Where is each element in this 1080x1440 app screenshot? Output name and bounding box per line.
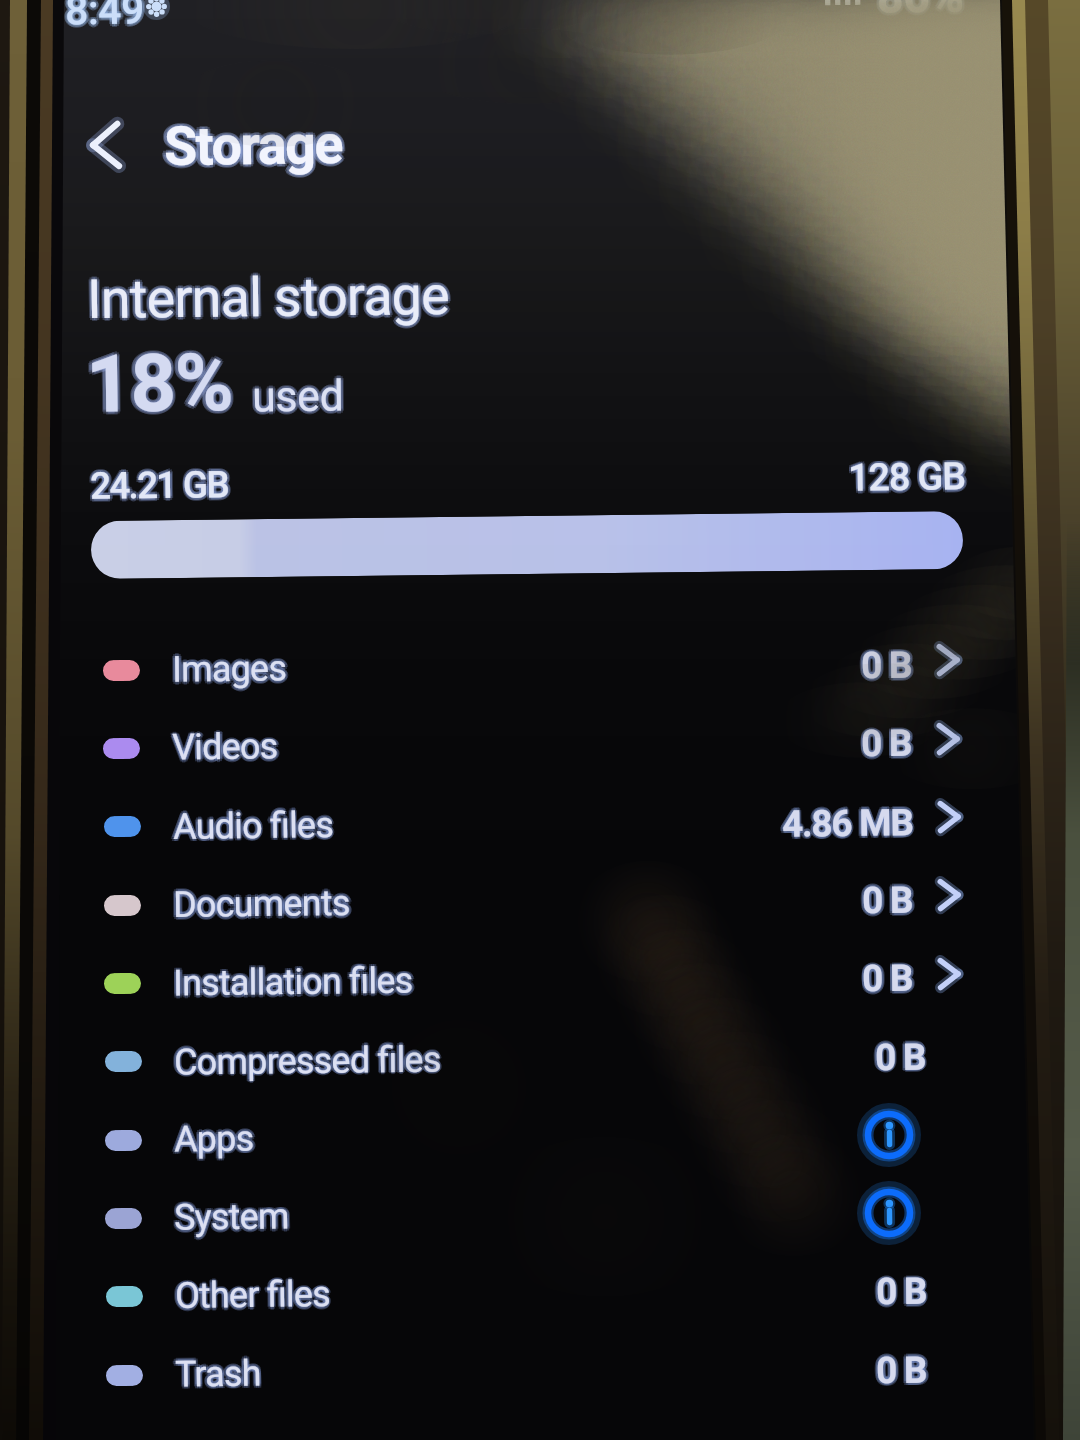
staticText: 0 B [873,1037,924,1080]
staticText: 8:49 [67,0,146,32]
staticText: 0 B [865,957,916,1000]
staticText: 0 B [860,877,911,920]
staticText: 0 B [861,647,912,690]
staticText: 86% [875,0,962,25]
staticText: 8:49 [67,0,146,36]
staticText: 0 B [874,1269,925,1312]
staticText: Compressed files [171,1038,438,1084]
staticText: Installation files [173,963,413,1007]
staticText: 86% [874,0,961,23]
staticText: 0 B [876,1346,927,1389]
staticText: 24.21 GB [88,463,226,508]
button[interactable] [58,1174,1008,1263]
staticText: Audio files [175,804,336,848]
staticText: 0 B [859,721,910,764]
staticText: 128 GB [850,456,967,503]
staticText: 18% [81,336,230,432]
staticText: System [174,1195,289,1239]
staticText: 8:49 [65,0,144,37]
staticText: 4.86 MB [780,799,911,844]
staticText: 0 B [859,722,910,765]
button[interactable] [58,1252,1008,1341]
button[interactable] [57,939,1007,1028]
button[interactable] [57,860,1007,949]
staticText: 86% [877,0,964,26]
staticText: Internal storage [84,264,446,331]
button[interactable] [57,1017,1007,1106]
staticText: Apps [177,1117,257,1160]
staticText: Installation files [171,960,411,1004]
staticText: 0 B [874,1347,925,1390]
staticText: System [174,1198,289,1242]
staticText: 0 B [864,877,915,920]
staticText: 18% [82,334,231,430]
staticText: Internal storage [85,262,447,329]
staticText: 128 GB [846,456,963,503]
staticText: used [250,368,342,420]
staticText: 0 B [862,876,913,919]
staticText: Documents [171,884,348,928]
staticText: Videos [174,724,280,768]
staticText: 0 B [861,725,912,768]
button[interactable] [59,1330,1009,1419]
staticText: 128 GB [848,454,965,501]
staticText: Audio files [171,806,332,850]
staticText: 0 B [875,1033,926,1076]
staticText: 0 B [860,959,911,1002]
staticText: Images [174,645,289,689]
staticText: 0 B [877,1272,928,1315]
button[interactable] [56,782,1006,871]
staticText: Installation files [173,958,413,1002]
staticText: 0 B [877,1036,928,1079]
staticText: Other files [177,1273,332,1317]
staticText: Other files [176,1275,331,1319]
staticText: 0 B [873,1349,924,1392]
staticText: Documents [171,880,348,924]
staticText: 0 B [862,882,913,925]
staticText: Installation files [173,960,413,1004]
staticText: Compressed files [172,1039,439,1085]
staticText: Other files [175,1276,330,1320]
staticText: 0 B [876,1349,927,1392]
button[interactable] [56,625,1006,714]
staticText: System [177,1195,292,1239]
staticText: 0 B [862,955,913,998]
button[interactable] [58,1095,1008,1184]
staticText: 0 B [877,1269,928,1312]
staticText: Trash [175,1352,261,1395]
staticText: Internal storage [90,264,452,331]
staticText: 86% [879,0,966,21]
staticText: 0 B [864,644,915,687]
staticText: 0 B [874,1351,925,1394]
staticText: Other files [173,1275,328,1319]
other: Info [861,1107,917,1163]
staticText: used [250,372,342,424]
staticText: Documents [173,879,350,923]
staticText: Audio files [173,801,334,845]
button[interactable]: Back [72,112,138,178]
staticText: Storage [164,113,342,178]
staticText: used [254,372,346,424]
staticText: Storage [167,113,345,178]
staticText: 0 B [879,1349,930,1392]
staticText: Trash [177,1352,263,1395]
staticText: 0 B [859,724,910,767]
staticText: 0 B [876,1273,927,1316]
staticText: 86% [879,0,966,25]
staticText: Images [170,649,285,693]
staticText: 0 B [859,642,910,685]
staticText: 86% [877,0,964,23]
staticText: Compressed files [172,1036,439,1082]
staticText: System [174,1193,289,1237]
staticText: 4.86 MB [780,803,911,848]
staticText: Videos [170,727,276,771]
staticText: 0 B [864,722,915,765]
staticText: 0 B [861,642,912,685]
staticText: used [252,367,344,419]
button[interactable] [56,704,1006,793]
staticText: 0 B [863,721,914,764]
staticText: 0 B [862,957,913,1000]
staticText: Compressed files [176,1038,443,1084]
staticText: Documents [175,880,352,924]
staticText: 24.21 GB [92,461,230,506]
